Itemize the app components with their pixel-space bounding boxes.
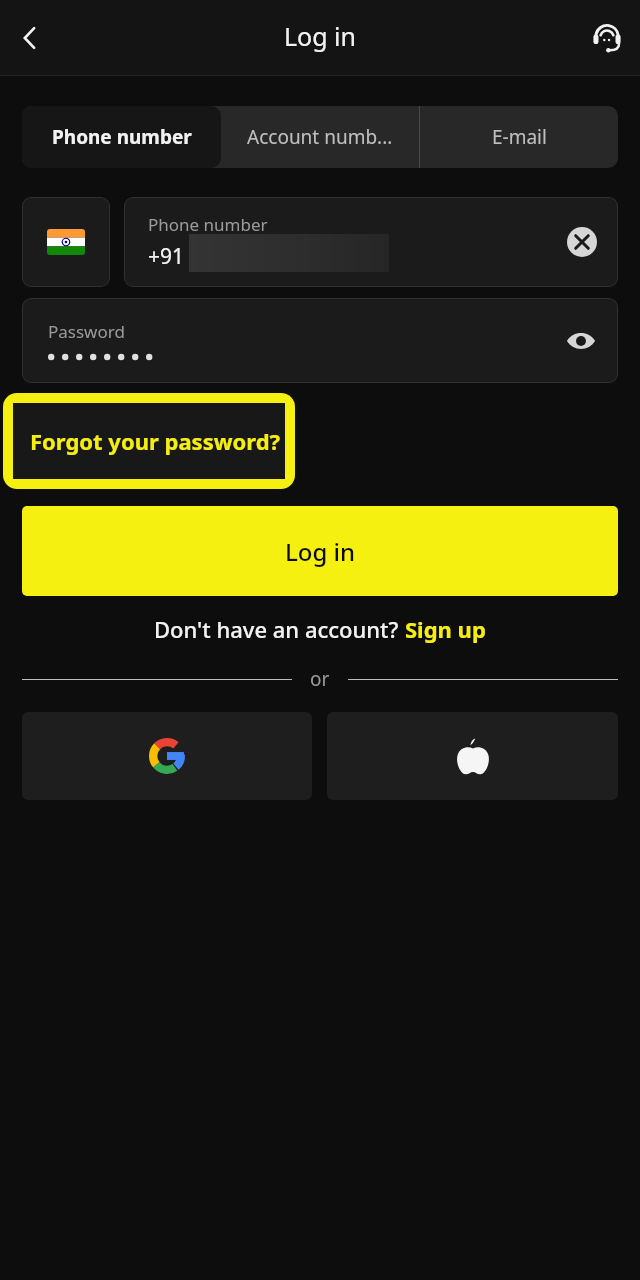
staticText: Log in xyxy=(284,19,357,53)
staticText: Forgot your password? xyxy=(30,426,281,456)
staticText: E-mail xyxy=(492,124,547,150)
button[interactable]: Continue with Google xyxy=(22,712,312,800)
button[interactable]: Phone number xyxy=(22,106,221,168)
staticText: Sign up xyxy=(405,614,486,644)
button[interactable]: Sign up xyxy=(405,614,486,644)
button[interactable]: Account numb... xyxy=(221,106,419,168)
button[interactable]: Password xyxy=(22,298,618,383)
button[interactable]: Country code, India xyxy=(22,197,110,287)
button[interactable]: Clear phone number xyxy=(560,220,604,264)
button[interactable]: Continue with Apple xyxy=(327,712,618,800)
button[interactable]: Log in xyxy=(22,506,618,596)
button[interactable]: E-mail xyxy=(420,106,618,168)
button[interactable]: Back xyxy=(6,14,54,62)
button[interactable]: Show password xyxy=(558,318,604,364)
staticText: Don't have an account? xyxy=(154,614,405,644)
staticText: or xyxy=(310,666,330,692)
staticText: Phone number xyxy=(148,213,268,236)
button[interactable]: Forgot your password? xyxy=(3,393,295,489)
staticText: Password xyxy=(48,320,125,343)
button[interactable]: Customer support xyxy=(582,13,632,63)
staticText: Account numb... xyxy=(247,124,393,150)
button[interactable]: Phone number xyxy=(124,197,618,287)
staticText: Phone number xyxy=(52,124,192,150)
staticText: Log in xyxy=(285,535,356,568)
staticText: +91 xyxy=(148,242,185,271)
